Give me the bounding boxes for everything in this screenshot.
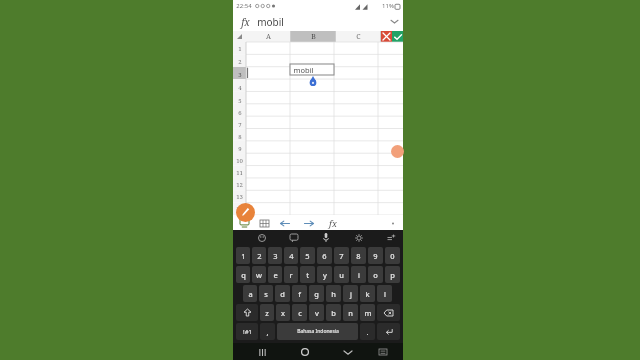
button[interactable]: j <box>343 285 358 302</box>
staticText: v <box>315 308 319 318</box>
button[interactable]: A <box>246 31 290 42</box>
button[interactable]: mobil <box>290 64 334 75</box>
button[interactable]: More <box>385 231 398 244</box>
button[interactable]: g <box>309 285 324 302</box>
staticText: Bahasa Indonesia <box>297 328 339 335</box>
button[interactable]: f <box>292 285 307 302</box>
button[interactable]: 10 <box>233 155 246 167</box>
button[interactable]: C <box>336 31 380 42</box>
button[interactable]: Next <box>302 216 316 230</box>
button[interactable]: 6 <box>233 107 246 119</box>
button[interactable]: 6 <box>317 247 332 264</box>
button[interactable]: 5 <box>300 247 315 264</box>
button[interactable]: 5 <box>233 94 246 107</box>
staticText: s <box>264 289 268 299</box>
button[interactable]: 9 <box>233 143 246 155</box>
button[interactable]: Hide keyboard <box>340 344 356 360</box>
button[interactable]: 3 <box>233 68 246 81</box>
button[interactable]: u <box>334 266 349 283</box>
staticText: 6 <box>238 109 242 117</box>
staticText: c <box>298 308 302 318</box>
button[interactable]: , <box>260 323 275 340</box>
button[interactable]: Stickers <box>287 231 300 244</box>
button[interactable]: x <box>276 304 290 321</box>
button[interactable]: Table <box>257 216 271 230</box>
button[interactable]: Edit <box>236 203 255 222</box>
staticText: i <box>358 270 360 280</box>
button[interactable]: n <box>343 304 358 321</box>
button[interactable]: 3 <box>268 247 282 264</box>
button[interactable]: 4 <box>233 81 246 94</box>
button[interactable]: 14 <box>233 203 246 215</box>
button[interactable]: o <box>368 266 383 283</box>
button[interactable]: y <box>317 266 332 283</box>
button[interactable]: Voice input <box>319 231 332 244</box>
button[interactable]: m <box>360 304 375 321</box>
button[interactable]: Function <box>233 12 257 31</box>
button[interactable]: Previous <box>278 216 292 230</box>
button[interactable]: 7 <box>334 247 349 264</box>
button[interactable]: d <box>275 285 290 302</box>
staticText: f <box>298 289 301 299</box>
button[interactable]: B <box>291 31 335 42</box>
button[interactable]: 9 <box>368 247 383 264</box>
button[interactable]: Expand formula bar <box>385 12 403 31</box>
button[interactable]: 11 <box>233 167 246 179</box>
button[interactable]: s <box>259 285 273 302</box>
button[interactable]: Cancel <box>381 31 392 42</box>
button[interactable]: i <box>351 266 366 283</box>
button[interactable]: 12 <box>233 179 246 191</box>
button[interactable]: a <box>243 285 257 302</box>
button[interactable]: Action <box>391 145 404 158</box>
button[interactable]: 8 <box>351 247 366 264</box>
button[interactable]: c <box>292 304 307 321</box>
button[interactable]: Function <box>326 216 340 230</box>
button[interactable]: Enter <box>377 323 400 340</box>
staticText: 5 <box>305 251 310 261</box>
button[interactable]: Switch keyboard <box>375 344 391 360</box>
button[interactable]: 2 <box>252 247 266 264</box>
button[interactable]: 2 <box>233 55 246 68</box>
button[interactable]: p <box>385 266 400 283</box>
button[interactable]: t <box>300 266 315 283</box>
button[interactable]: r <box>284 266 298 283</box>
button[interactable]: Home <box>297 344 313 360</box>
staticText: 2 <box>238 58 242 66</box>
button[interactable]: h <box>326 285 341 302</box>
button[interactable]: v <box>309 304 324 321</box>
button[interactable]: k <box>360 285 375 302</box>
button[interactable]: Backspace <box>377 304 400 321</box>
button[interactable]: q <box>236 266 250 283</box>
button[interactable]: e <box>268 266 282 283</box>
button[interactable]: 4 <box>284 247 298 264</box>
button[interactable]: 13 <box>233 191 246 203</box>
button[interactable]: . <box>360 323 375 340</box>
staticText: 1 <box>238 45 242 53</box>
button[interactable]: 0 <box>385 247 400 264</box>
staticText: 3 <box>273 251 278 261</box>
button[interactable]: Recent apps <box>254 344 270 360</box>
button[interactable]: Select all <box>233 31 246 42</box>
button[interactable]: z <box>260 304 274 321</box>
button[interactable]: l <box>377 285 392 302</box>
staticText: h <box>331 289 336 299</box>
staticText: 8 <box>238 133 242 141</box>
button[interactable]: Emoji <box>255 231 268 244</box>
button[interactable]: w <box>252 266 266 283</box>
button[interactable]: Keyboard settings <box>352 231 365 244</box>
button[interactable]: 1 <box>233 42 246 55</box>
button[interactable]: Bahasa Indonesia <box>277 323 358 340</box>
staticText: a <box>248 289 253 299</box>
button[interactable]: b <box>326 304 341 321</box>
staticText: mobil <box>257 15 284 29</box>
staticText: B <box>311 32 316 42</box>
button[interactable]: !#1 <box>236 323 258 340</box>
button[interactable]: 1 <box>236 247 250 264</box>
staticText: x <box>281 308 285 318</box>
button[interactable]: 7 <box>233 119 246 131</box>
button[interactable]: Sheet view <box>237 216 251 230</box>
button[interactable]: More options <box>386 216 400 230</box>
button[interactable]: Shift <box>236 304 258 321</box>
button[interactable]: Confirm <box>392 31 403 42</box>
button[interactable]: 8 <box>233 131 246 143</box>
